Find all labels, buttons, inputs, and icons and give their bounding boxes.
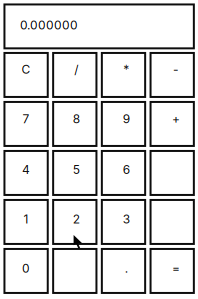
staticText: 1 bbox=[24, 212, 29, 226]
button[interactable]: Eight bbox=[52, 101, 97, 147]
staticText: + bbox=[172, 112, 180, 126]
button[interactable]: Multiply bbox=[101, 52, 146, 98]
button[interactable]: Decimal point bbox=[101, 248, 146, 294]
staticText: / bbox=[74, 62, 78, 77]
staticText: 6 bbox=[123, 162, 130, 177]
staticText: * bbox=[123, 62, 129, 77]
button[interactable]: Four bbox=[3, 150, 49, 196]
staticText: 0.000000 bbox=[20, 18, 78, 32]
staticText: 0 bbox=[22, 261, 30, 276]
button[interactable]: Clear bbox=[3, 52, 49, 98]
button[interactable]: Divide bbox=[52, 52, 97, 98]
button[interactable]: One bbox=[3, 199, 49, 245]
button[interactable]: Six bbox=[101, 150, 146, 196]
staticText: 3 bbox=[123, 212, 130, 226]
staticText: 2 bbox=[73, 212, 80, 226]
button[interactable]: Add bbox=[149, 101, 195, 147]
staticText: 8 bbox=[73, 112, 80, 126]
staticText: = bbox=[172, 261, 180, 276]
staticText: C bbox=[22, 62, 31, 77]
staticText: 9 bbox=[123, 112, 130, 126]
button[interactable]: Zero bbox=[3, 248, 49, 294]
button[interactable]: Seven bbox=[3, 101, 49, 147]
staticText: 5 bbox=[73, 162, 80, 177]
button[interactable]: Blank key bbox=[52, 248, 97, 294]
button[interactable]: Blank key bbox=[149, 199, 195, 245]
button[interactable]: Blank key bbox=[149, 150, 195, 196]
staticText: - bbox=[173, 62, 179, 77]
button[interactable]: Nine bbox=[101, 101, 146, 147]
button[interactable]: Subtract bbox=[149, 52, 195, 98]
button[interactable]: Two bbox=[52, 199, 97, 245]
button[interactable]: Three bbox=[101, 199, 146, 245]
staticText: . bbox=[125, 261, 128, 276]
button[interactable]: Equals bbox=[149, 248, 195, 294]
staticText: 7 bbox=[23, 112, 30, 126]
button[interactable]: Five bbox=[52, 150, 97, 196]
staticText: 4 bbox=[22, 162, 30, 177]
